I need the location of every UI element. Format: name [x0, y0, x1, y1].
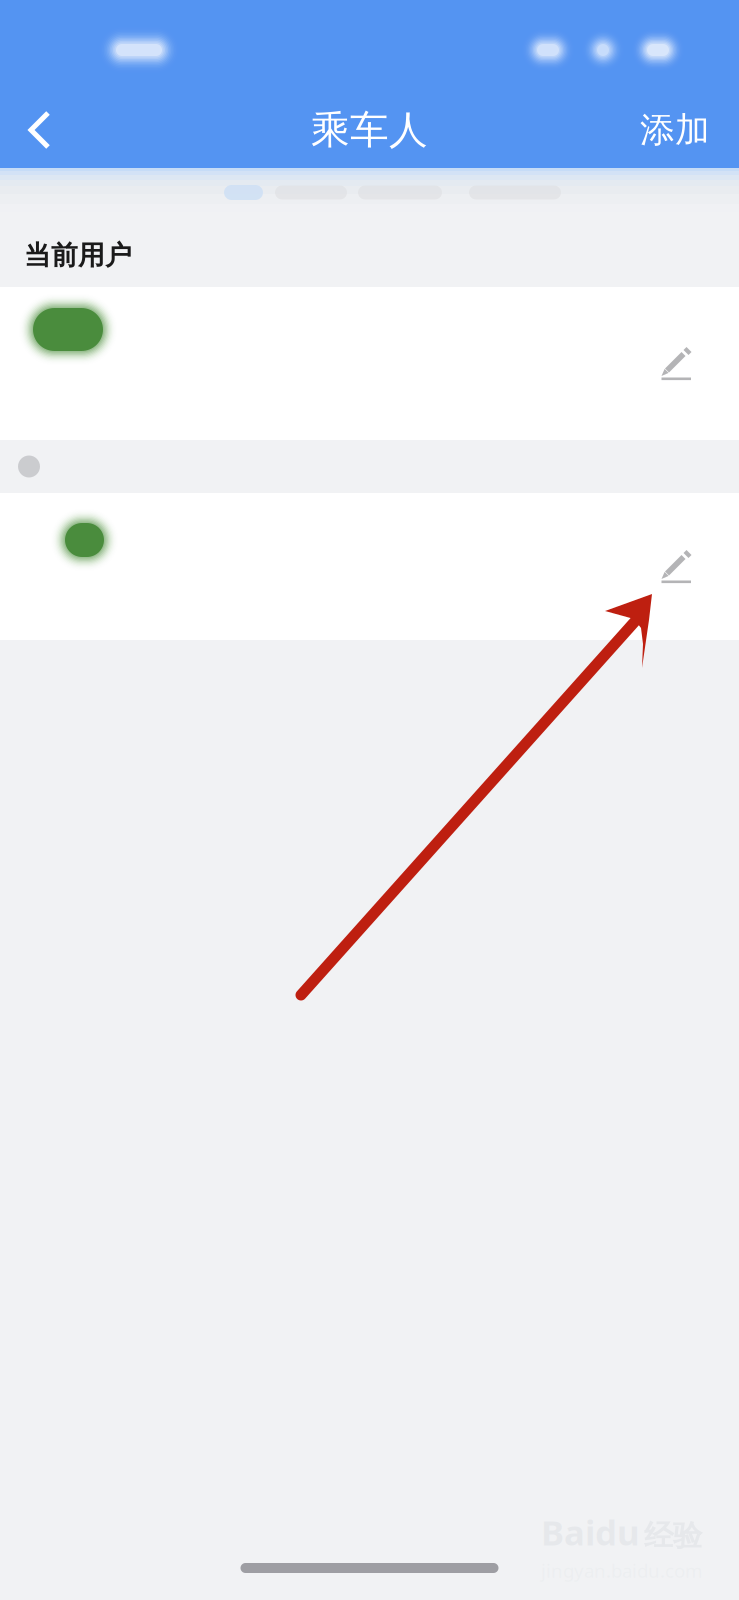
button[interactable]: Back [0, 88, 80, 172]
staticText: 当前用户 [24, 239, 132, 272]
staticText: Baidu [541, 1509, 640, 1555]
button[interactable] [0, 493, 739, 640]
button[interactable]: 添加 [623, 88, 739, 172]
staticText: 添加 [640, 109, 710, 151]
button[interactable] [0, 287, 739, 440]
staticText: 乘车人 [311, 106, 428, 154]
staticText: 经验 [644, 1518, 702, 1554]
